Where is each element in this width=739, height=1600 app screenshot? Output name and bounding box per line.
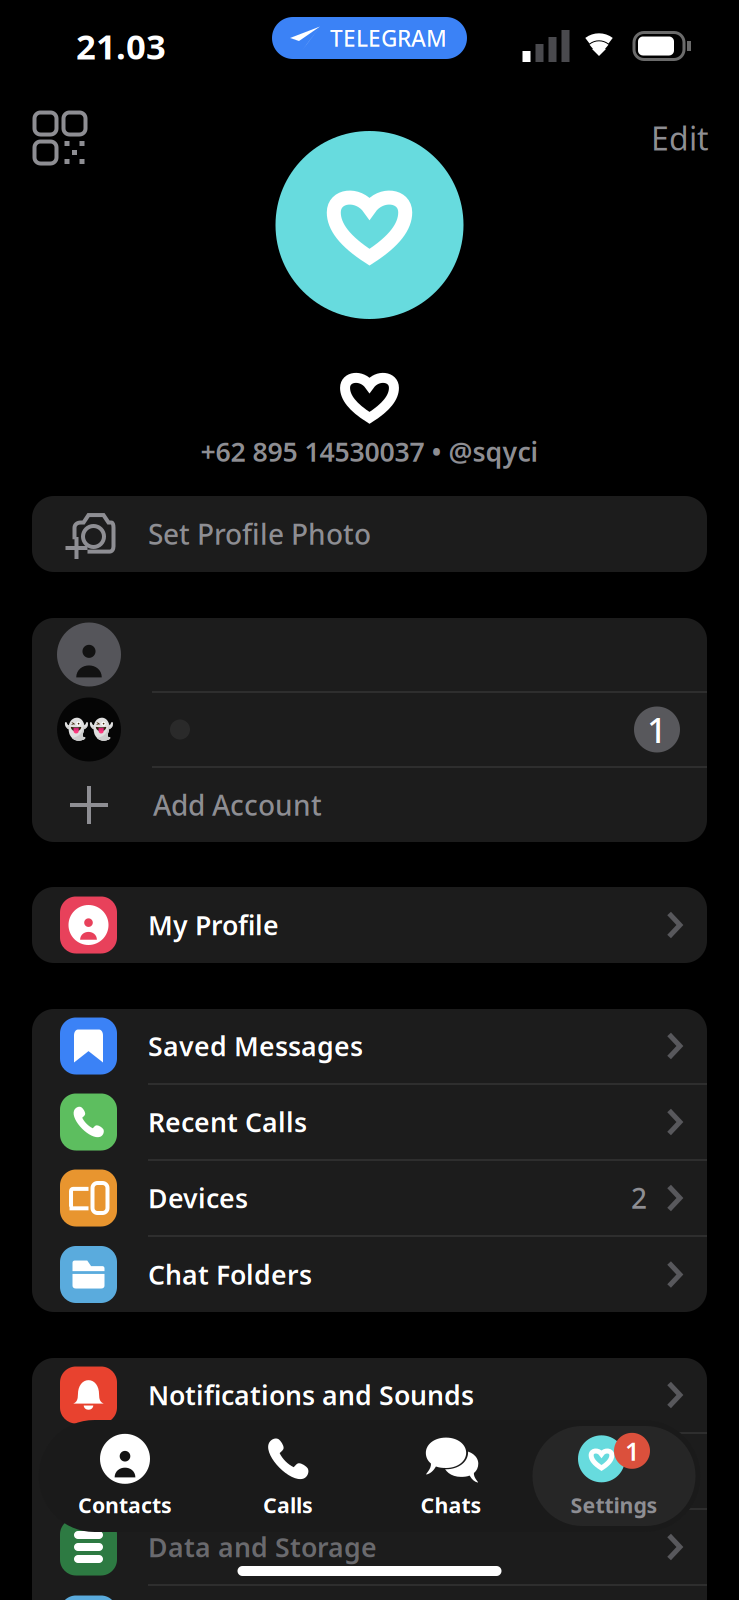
button[interactable]: Notifications and Sounds: [32, 1358, 707, 1434]
button[interactable]: Calls: [206, 1426, 369, 1526]
staticText: Recent Calls: [148, 1104, 307, 1140]
staticText: Edit: [651, 117, 709, 159]
staticText: Contacts: [78, 1491, 172, 1519]
staticText: Settings: [570, 1491, 657, 1519]
staticText: Calls: [263, 1491, 313, 1519]
button[interactable]: Devices: [32, 1161, 707, 1237]
button[interactable]: Privacy and Security: [32, 1434, 707, 1510]
staticText: 1: [625, 1434, 639, 1468]
staticText: Notifications and Sounds: [148, 1377, 474, 1413]
staticText: Chats: [420, 1491, 481, 1519]
button[interactable]: My Profile: [32, 887, 707, 963]
button[interactable]: Account 2: [32, 693, 707, 768]
button[interactable]: 1: [532, 1426, 695, 1526]
staticText: Set Profile Photo: [148, 515, 371, 553]
staticText: Add Account: [153, 786, 322, 824]
staticText: +62 895 14530037 • @sqyci: [200, 434, 538, 469]
button[interactable]: Set Profile Photo: [0, 496, 739, 572]
button[interactable]: Account: [32, 618, 707, 693]
button[interactable]: Appearance: [32, 1586, 707, 1600]
staticText: 1: [647, 706, 667, 752]
button[interactable]: Chat Folders: [32, 1237, 707, 1312]
button[interactable]: Data and Storage: [32, 1510, 707, 1586]
staticText: Data and Storage: [148, 1529, 377, 1565]
staticText: TELEGRAM: [330, 23, 447, 53]
staticText: Devices: [148, 1180, 248, 1216]
button[interactable]: Saved Messages: [32, 1009, 707, 1085]
button[interactable]: Recent Calls: [32, 1085, 707, 1161]
staticText: Chat Folders: [148, 1257, 312, 1292]
button[interactable]: Edit: [651, 106, 709, 170]
staticText: My Profile: [148, 907, 279, 943]
staticText: 21.03: [76, 23, 166, 69]
staticText: 2: [631, 1179, 647, 1217]
button[interactable]: Contacts: [43, 1426, 206, 1526]
staticText: Privacy and Security: [148, 1453, 414, 1489]
button[interactable]: Scan QR code: [28, 106, 92, 170]
staticText: 👻👻: [64, 718, 114, 741]
staticText: Saved Messages: [148, 1028, 363, 1064]
button[interactable]: Add Account: [32, 768, 707, 842]
button[interactable]: Chats: [369, 1426, 532, 1526]
